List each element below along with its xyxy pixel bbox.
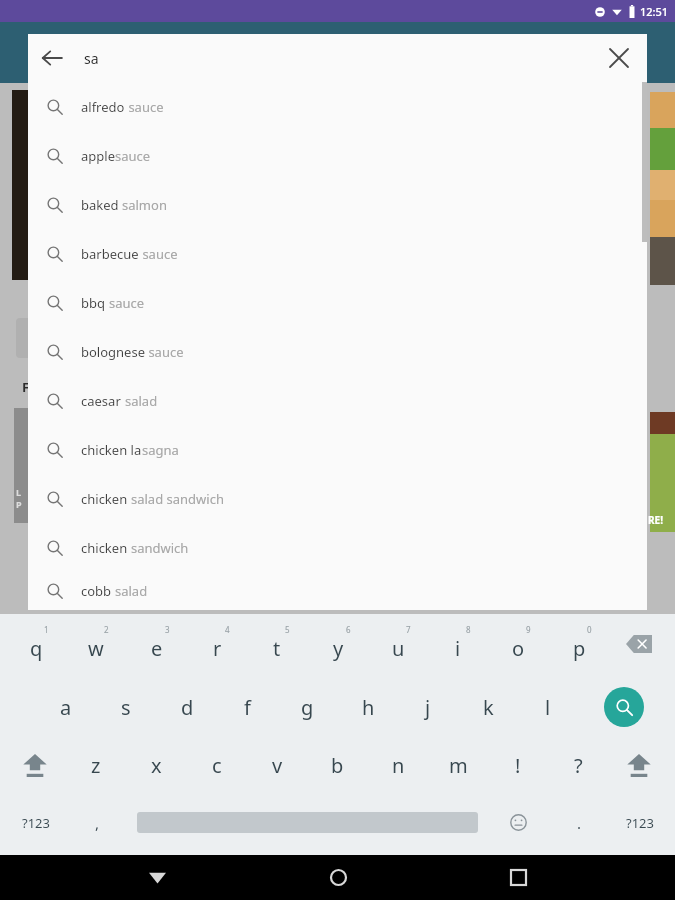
staticText: o — [512, 635, 525, 662]
button[interactable]: 3 — [129, 614, 185, 672]
button[interactable]: l — [520, 678, 576, 736]
staticText: r — [213, 635, 222, 662]
button[interactable]: ! — [490, 736, 546, 794]
staticText: w — [88, 635, 104, 662]
button[interactable]: 8 — [430, 614, 486, 672]
button[interactable]: 9 — [490, 614, 546, 672]
button[interactable]: ?123 — [8, 794, 64, 851]
button[interactable]: Search — [604, 687, 644, 727]
staticText: , — [95, 813, 100, 833]
staticText: ! — [515, 752, 521, 779]
button[interactable]: n — [370, 736, 426, 794]
button[interactable]: ? — [550, 736, 606, 794]
button[interactable]: k — [460, 678, 516, 736]
staticText: 8 — [466, 624, 471, 635]
staticText: bolognese — [81, 343, 145, 361]
staticText: 6 — [346, 624, 351, 635]
button[interactable]: d — [159, 678, 215, 736]
staticText: u — [392, 635, 405, 662]
staticText: sagna — [142, 441, 179, 459]
button[interactable]: alfredo — [28, 82, 647, 131]
button[interactable]: chicken — [28, 474, 647, 523]
button[interactable]: 1 — [8, 614, 64, 672]
button[interactable]: Back — [133, 855, 181, 900]
staticText: c — [212, 752, 222, 779]
staticText: q — [30, 635, 43, 662]
button[interactable]: . — [556, 794, 602, 851]
button[interactable]: apple — [28, 131, 647, 180]
button[interactable]: chicken la — [28, 425, 647, 474]
button[interactable]: Emoji — [495, 794, 541, 851]
staticText: baked — [81, 196, 122, 214]
staticText: x — [151, 752, 162, 779]
button[interactable]: b — [309, 736, 365, 794]
staticText: z — [91, 752, 101, 779]
button[interactable]: Shift — [612, 746, 666, 784]
staticText: cobb — [81, 582, 115, 600]
staticText: sauce — [145, 343, 184, 361]
staticText: RE! — [648, 513, 663, 527]
button[interactable]: a — [38, 678, 94, 736]
button[interactable]: Home — [314, 855, 362, 900]
button[interactable]: v — [249, 736, 305, 794]
staticText: L P — [16, 486, 22, 510]
staticText: ?123 — [22, 814, 50, 832]
button[interactable]: z — [68, 736, 124, 794]
staticText: v — [272, 752, 283, 779]
staticText: 5 — [285, 624, 290, 635]
button[interactable]: 2 — [68, 614, 124, 672]
button[interactable]: 6 — [310, 614, 366, 672]
staticText: m — [449, 752, 468, 779]
staticText: F — [22, 378, 30, 396]
button[interactable]: g — [279, 678, 335, 736]
button[interactable]: bolognese — [28, 327, 647, 376]
staticText: barbecue — [81, 245, 139, 263]
staticText: 2 — [104, 624, 109, 635]
staticText: sa — [84, 49, 99, 68]
button[interactable]: j — [400, 678, 456, 736]
staticText: j — [425, 694, 431, 721]
button[interactable]: barbecue — [28, 229, 647, 278]
button[interactable]: f — [219, 678, 275, 736]
button[interactable]: caesar — [28, 376, 647, 425]
staticText: sandwich — [131, 539, 189, 557]
button[interactable]: Back — [28, 34, 76, 82]
button[interactable]: Backspace — [622, 633, 656, 655]
button[interactable]: m — [430, 736, 486, 794]
staticText: f — [244, 694, 251, 721]
button[interactable]: c — [189, 736, 245, 794]
staticText: bbq — [81, 294, 109, 312]
staticText: sauce — [109, 294, 145, 312]
staticText: 0 — [587, 624, 592, 635]
staticText: caesar — [81, 392, 125, 410]
button[interactable]: h — [340, 678, 396, 736]
staticText: a — [60, 694, 72, 721]
button[interactable]: ?123 — [612, 794, 668, 851]
button[interactable]: , — [72, 794, 122, 851]
staticText: t — [273, 635, 281, 662]
button[interactable]: chicken — [28, 523, 647, 572]
button[interactable]: x — [128, 736, 184, 794]
staticText: d — [181, 694, 194, 721]
button[interactable]: 0 — [551, 614, 607, 672]
staticText: sauce — [125, 98, 164, 116]
button[interactable]: cobb — [28, 572, 647, 610]
button[interactable]: Shift — [8, 746, 62, 784]
staticText: . — [577, 813, 582, 833]
staticText: 12:51 — [640, 4, 669, 19]
staticText: salmon — [122, 196, 167, 214]
button[interactable]: baked — [28, 180, 647, 229]
button[interactable]: 7 — [370, 614, 426, 672]
button[interactable]: 4 — [189, 614, 245, 672]
staticText: k — [483, 694, 494, 721]
button[interactable]: bbq — [28, 278, 647, 327]
button[interactable]: s — [98, 678, 154, 736]
button[interactable]: 5 — [249, 614, 305, 672]
button[interactable]: Clear — [595, 34, 643, 82]
staticText: 9 — [526, 624, 531, 635]
staticText: 1 — [44, 624, 49, 635]
staticText: 3 — [165, 624, 170, 635]
staticText: salad — [115, 582, 148, 600]
button[interactable]: Recents — [494, 855, 542, 900]
